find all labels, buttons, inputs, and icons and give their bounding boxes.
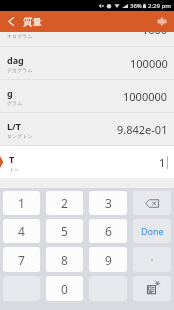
button[interactable]: 9 <box>89 247 127 272</box>
staticText: g <box>7 87 13 99</box>
staticText: 2 <box>61 195 68 211</box>
staticText: トン <box>9 166 20 172</box>
staticText: 5 <box>61 223 68 239</box>
button[interactable]: Back <box>0 11 21 32</box>
button[interactable]: 0 <box>46 276 83 301</box>
button[interactable]: Keyboard settings <box>133 276 171 301</box>
staticText: 1000000 <box>123 89 168 104</box>
staticText: 9 <box>105 252 112 268</box>
button[interactable]: 2 <box>46 191 83 215</box>
staticText: デカグラム <box>7 67 33 73</box>
staticText: 質量 <box>23 16 42 28</box>
staticText: 100000 <box>130 56 168 71</box>
button[interactable]: Swap units <box>153 11 171 32</box>
staticText: 1 <box>159 155 166 170</box>
staticText: Done <box>141 225 164 237</box>
staticText: 1 <box>18 195 25 211</box>
button[interactable]: L/T <box>0 113 174 145</box>
button[interactable]: T <box>0 146 174 178</box>
button[interactable]: 6 <box>89 219 127 243</box>
staticText: 8 <box>61 252 68 268</box>
button[interactable]: 3 <box>89 191 127 215</box>
staticText: L/T <box>7 120 21 132</box>
button[interactable]: Backspace <box>133 191 171 215</box>
button[interactable]: 7 <box>3 247 40 272</box>
staticText: 4 <box>18 223 25 239</box>
staticText: 1000 <box>142 32 168 36</box>
staticText: キログラム <box>7 33 33 39</box>
staticText: 7 <box>18 252 25 268</box>
button[interactable]: dag <box>0 47 174 79</box>
staticText: T <box>9 153 15 165</box>
staticText: dag <box>7 54 24 66</box>
button[interactable]: 4 <box>3 219 40 243</box>
button[interactable]: 8 <box>46 247 83 272</box>
button[interactable]: 1 <box>3 191 40 215</box>
staticText: 3 <box>105 195 112 211</box>
staticText: ロングトン <box>7 133 33 139</box>
button[interactable]: g <box>0 80 174 112</box>
staticText: 6 <box>105 223 112 239</box>
button[interactable]: 5 <box>46 219 83 243</box>
button[interactable]: キログラム <box>0 32 174 46</box>
staticText: 36% <box>130 2 142 10</box>
staticText: グラム <box>7 100 23 106</box>
staticText: 9.842e-01 <box>117 122 168 137</box>
staticText: 2:29 pm <box>148 2 171 10</box>
button[interactable]: Done <box>133 219 171 243</box>
staticText: 0 <box>61 281 68 297</box>
